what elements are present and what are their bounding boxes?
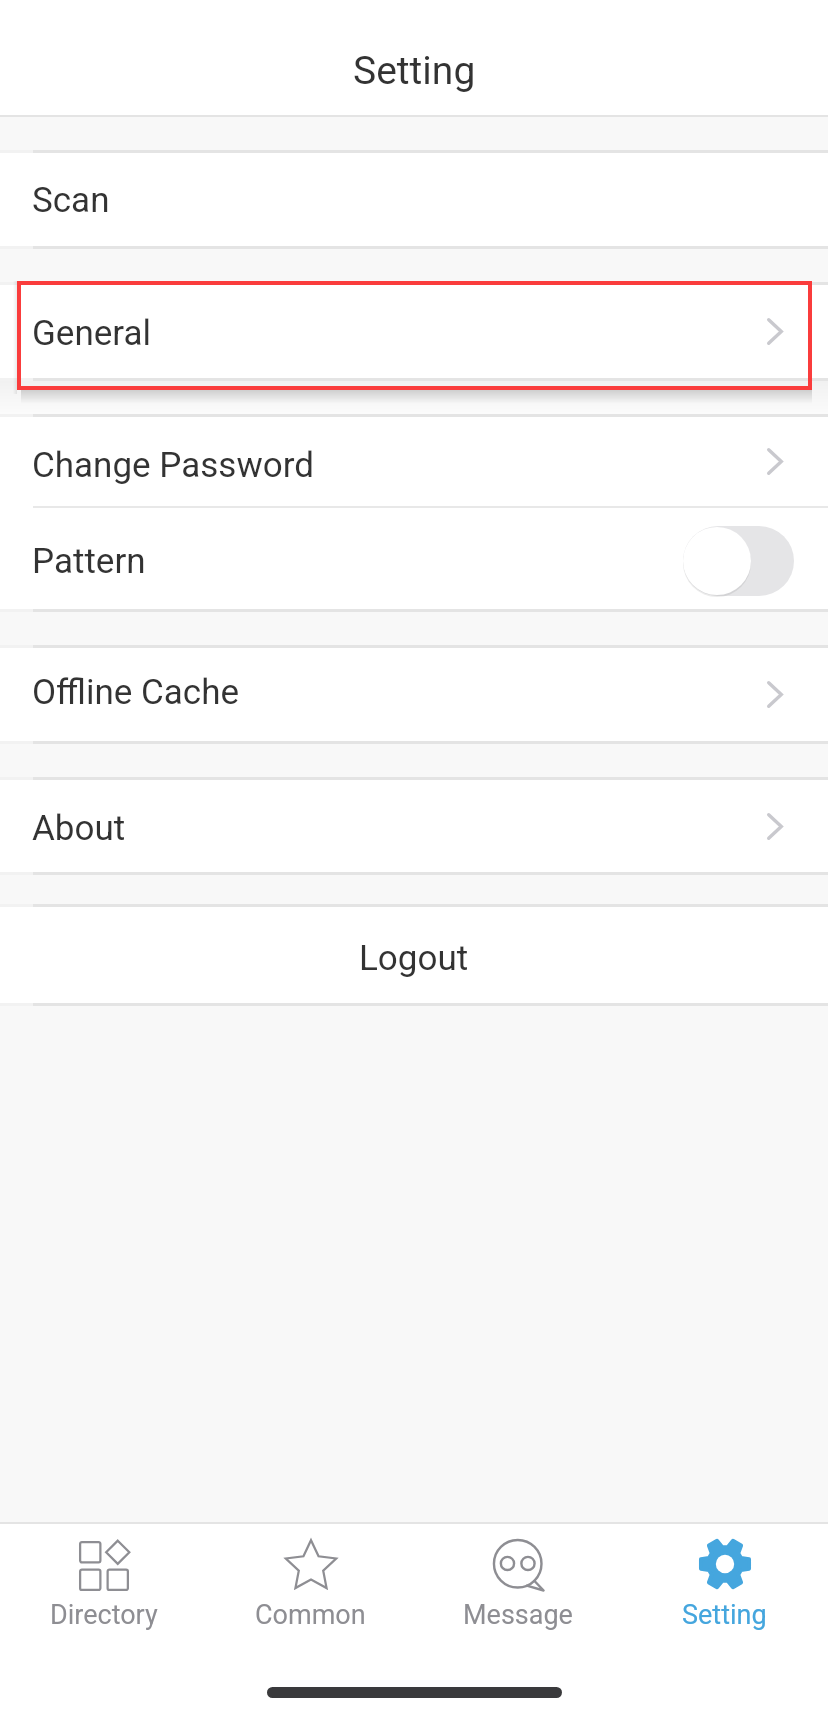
staticText: Setting: [682, 1599, 767, 1631]
other: About: [767, 813, 783, 840]
staticText: Message: [463, 1599, 573, 1631]
staticText: Setting: [353, 48, 476, 94]
staticText: Offline Cache: [32, 672, 240, 713]
button[interactable]: Pattern: [0, 508, 828, 609]
button[interactable]: Common: [207, 1524, 414, 1642]
button[interactable]: Logout: [0, 907, 828, 1003]
button[interactable]: About: [0, 780, 828, 872]
staticText: Directory: [50, 1599, 158, 1631]
button[interactable]: Directory: [0, 1524, 207, 1642]
staticText: Common: [255, 1599, 366, 1631]
button[interactable]: General: [0, 285, 828, 378]
staticText: Scan: [32, 180, 110, 221]
button[interactable]: Offline Cache: [0, 648, 828, 741]
button[interactable]: Setting: [621, 1524, 828, 1642]
staticText: About: [32, 808, 126, 849]
staticText: Logout: [359, 938, 469, 979]
other: General: [767, 318, 783, 345]
other: Change Password: [767, 448, 783, 475]
button[interactable]: Pattern toggle: [683, 526, 794, 596]
button[interactable]: Scan: [0, 153, 828, 246]
staticText: Pattern: [32, 541, 146, 582]
button[interactable]: Change Password: [0, 417, 828, 506]
staticText: General: [32, 313, 152, 354]
other: Offline Cache: [767, 681, 783, 708]
staticText: Change Password: [32, 445, 314, 486]
button[interactable]: Message: [414, 1524, 621, 1642]
